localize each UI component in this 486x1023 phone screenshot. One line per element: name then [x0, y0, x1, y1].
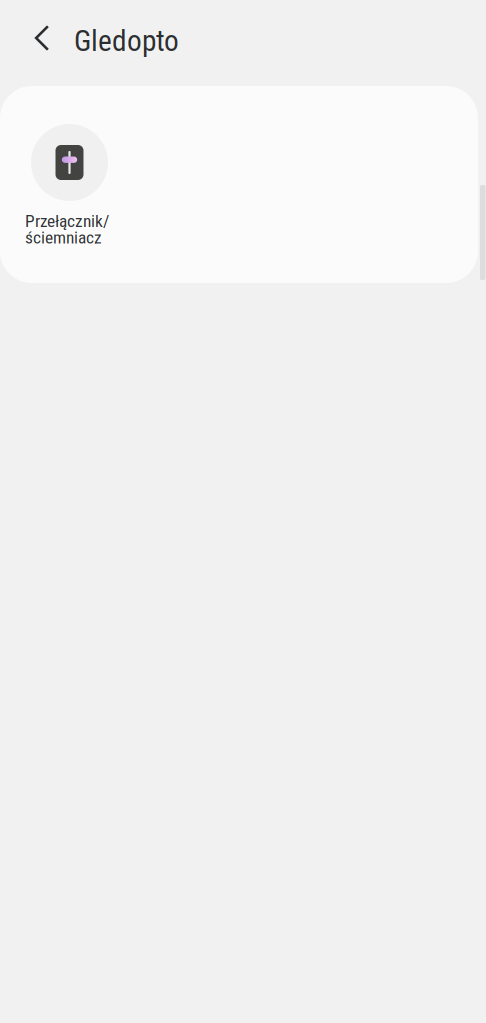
staticText: Gledopto: [74, 24, 179, 58]
button[interactable]: Back: [18, 17, 66, 65]
staticText: Przełącznik/ ściemniacz: [25, 211, 109, 248]
button[interactable]: Przełącznik/ściemniacz: [25, 124, 137, 283]
